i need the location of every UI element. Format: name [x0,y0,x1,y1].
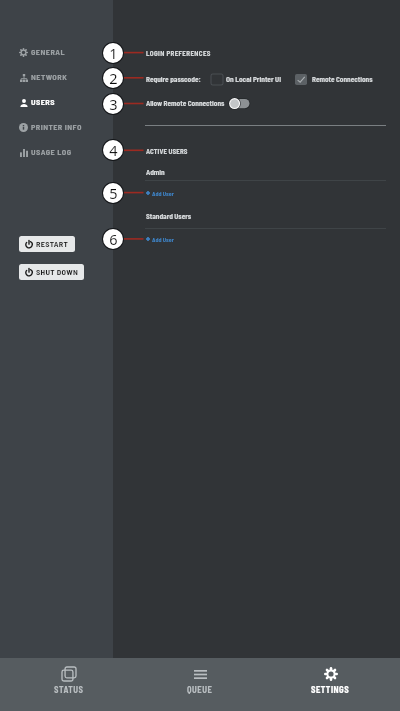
staticText: Remote Connections [312,75,373,84]
staticText: Allow Remote Connections [146,99,225,108]
staticText: Admin [146,168,165,177]
button[interactable]: USERS [0,91,113,113]
button[interactable]: USAGE LOG [0,141,113,163]
staticText: PRINTER INFO [31,122,82,132]
staticText: GENERAL [31,47,66,57]
button[interactable]: RESTART [19,236,75,252]
button[interactable]: GENERAL [0,41,113,63]
staticText: RESTART [36,239,69,249]
staticText: Add User [152,236,174,243]
staticText: LOGIN PREFERENCES [146,49,211,57]
button[interactable]: Checked option [295,74,307,85]
button[interactable]: STATUS [4,658,134,711]
button[interactable]: Unchecked option [211,74,223,85]
staticText: NETWORK [31,72,68,82]
button[interactable]: SHUT DOWN [19,264,84,280]
staticText: Require passcode: [146,75,201,84]
button[interactable]: Add User [146,234,174,244]
button[interactable]: QUEUE [134,658,265,711]
staticText: Add User [152,190,174,197]
staticText: ACTIVE USERS [146,147,188,155]
staticText: STATUS [54,684,84,694]
staticText: 4 [109,140,118,160]
button[interactable]: Add User [146,188,174,198]
staticText: USERS [31,97,55,107]
staticText: 5 [109,183,118,203]
button[interactable]: SETTINGS [265,658,396,711]
staticText: 2 [109,68,118,88]
staticText: USAGE LOG [31,147,72,157]
staticText: 6 [109,229,118,249]
button[interactable]: PRINTER INFO [0,116,113,138]
staticText: Standard Users [146,212,192,221]
staticText: SHUT DOWN [36,267,79,277]
staticText: QUEUE [187,684,213,694]
staticText: SETTINGS [311,684,350,694]
staticText: 1 [109,43,118,63]
button[interactable]: NETWORK [0,66,113,88]
staticText: On Local Printer UI [226,75,282,84]
staticText: 3 [109,94,118,114]
button[interactable]: Allow Remote Connections toggle [227,96,252,112]
